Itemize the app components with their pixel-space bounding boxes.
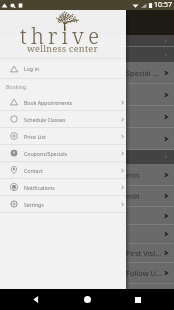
button[interactable]: Log in [0, 59, 126, 78]
button[interactable]: Back [21, 289, 51, 310]
button[interactable] [0, 106, 174, 127]
staticText: min [126, 170, 140, 180]
button[interactable] [0, 207, 174, 224]
staticText: Booking [6, 83, 27, 90]
button[interactable] [0, 225, 174, 243]
button[interactable]: Recent apps [123, 289, 153, 310]
staticText: Price List [24, 133, 46, 140]
button[interactable]: Settings [0, 196, 126, 212]
staticText: Log in [24, 65, 39, 72]
button[interactable]: min [0, 186, 174, 206]
button[interactable]: Follow U... [0, 263, 174, 283]
staticText: wellness center [27, 42, 99, 54]
staticText: min [126, 191, 140, 201]
button[interactable]: Schedule Classes [0, 111, 126, 127]
staticText: Notifications [24, 184, 55, 191]
staticText: Special ... [126, 68, 159, 78]
staticText: 10:57 [154, 0, 172, 10]
staticText: Contact [24, 167, 43, 174]
button[interactable]: Coupons/Specials [0, 145, 126, 161]
staticText: Book Appointments [24, 99, 73, 106]
button[interactable]: Notifications [0, 179, 126, 195]
staticText: thrive [20, 22, 104, 51]
staticText: First Visi... [126, 248, 162, 258]
button[interactable] [0, 284, 174, 304]
button[interactable]: Home [72, 289, 102, 310]
button[interactable]: Price List [0, 128, 126, 144]
button[interactable]: Contact [0, 162, 126, 178]
button[interactable] [0, 128, 174, 149]
button[interactable]: min [0, 165, 174, 185]
staticText: Follow U... [126, 268, 162, 278]
button[interactable] [0, 84, 174, 105]
button[interactable]: First Visi... [0, 244, 174, 262]
button[interactable]: Special ... [0, 63, 174, 83]
staticText: Coupons/Specials [24, 150, 68, 157]
staticText: Settings [24, 201, 44, 208]
button[interactable]: Book Appointments [0, 94, 126, 110]
staticText: Schedule Classes [24, 116, 66, 123]
